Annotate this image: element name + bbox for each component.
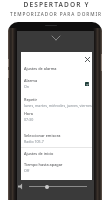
- staticText: 07:30: [24, 117, 34, 122]
- button[interactable]: Tiempo hasta apagar: [21, 162, 92, 175]
- button[interactable]: Seleccionar emisora: [21, 133, 92, 146]
- staticText: DESPERTADOR Y: [23, 0, 90, 9]
- button[interactable]: Hora: [21, 111, 92, 124]
- staticText: Hora: [24, 111, 33, 116]
- button[interactable]: Cerrar: [83, 55, 92, 64]
- staticText: Off: [24, 168, 30, 173]
- staticText: lunes, martes, miércoles, jueves, vierne…: [24, 103, 92, 108]
- staticText: Repetir: [24, 97, 38, 102]
- staticText: Seleccionar emisora: [24, 133, 61, 138]
- staticText: Ajustes de alarma: [24, 66, 57, 71]
- staticText: On: [24, 84, 30, 89]
- staticText: Ajustes de inicio: [24, 151, 54, 156]
- button[interactable]: Alarma: [21, 78, 92, 91]
- button[interactable]: Volumen: [18, 183, 24, 190]
- staticText: Radio 105.7: [24, 139, 44, 144]
- button[interactable]: Repetir: [21, 97, 92, 110]
- staticText: TEMPORIZADOR PARA DORMIR: [10, 11, 102, 17]
- staticText: Tiempo hasta apagar: [24, 162, 63, 167]
- button[interactable]: Nivel de volumen: [45, 185, 49, 189]
- button[interactable]: Contraer panel: [52, 36, 60, 40]
- staticText: Alarma: [24, 78, 38, 83]
